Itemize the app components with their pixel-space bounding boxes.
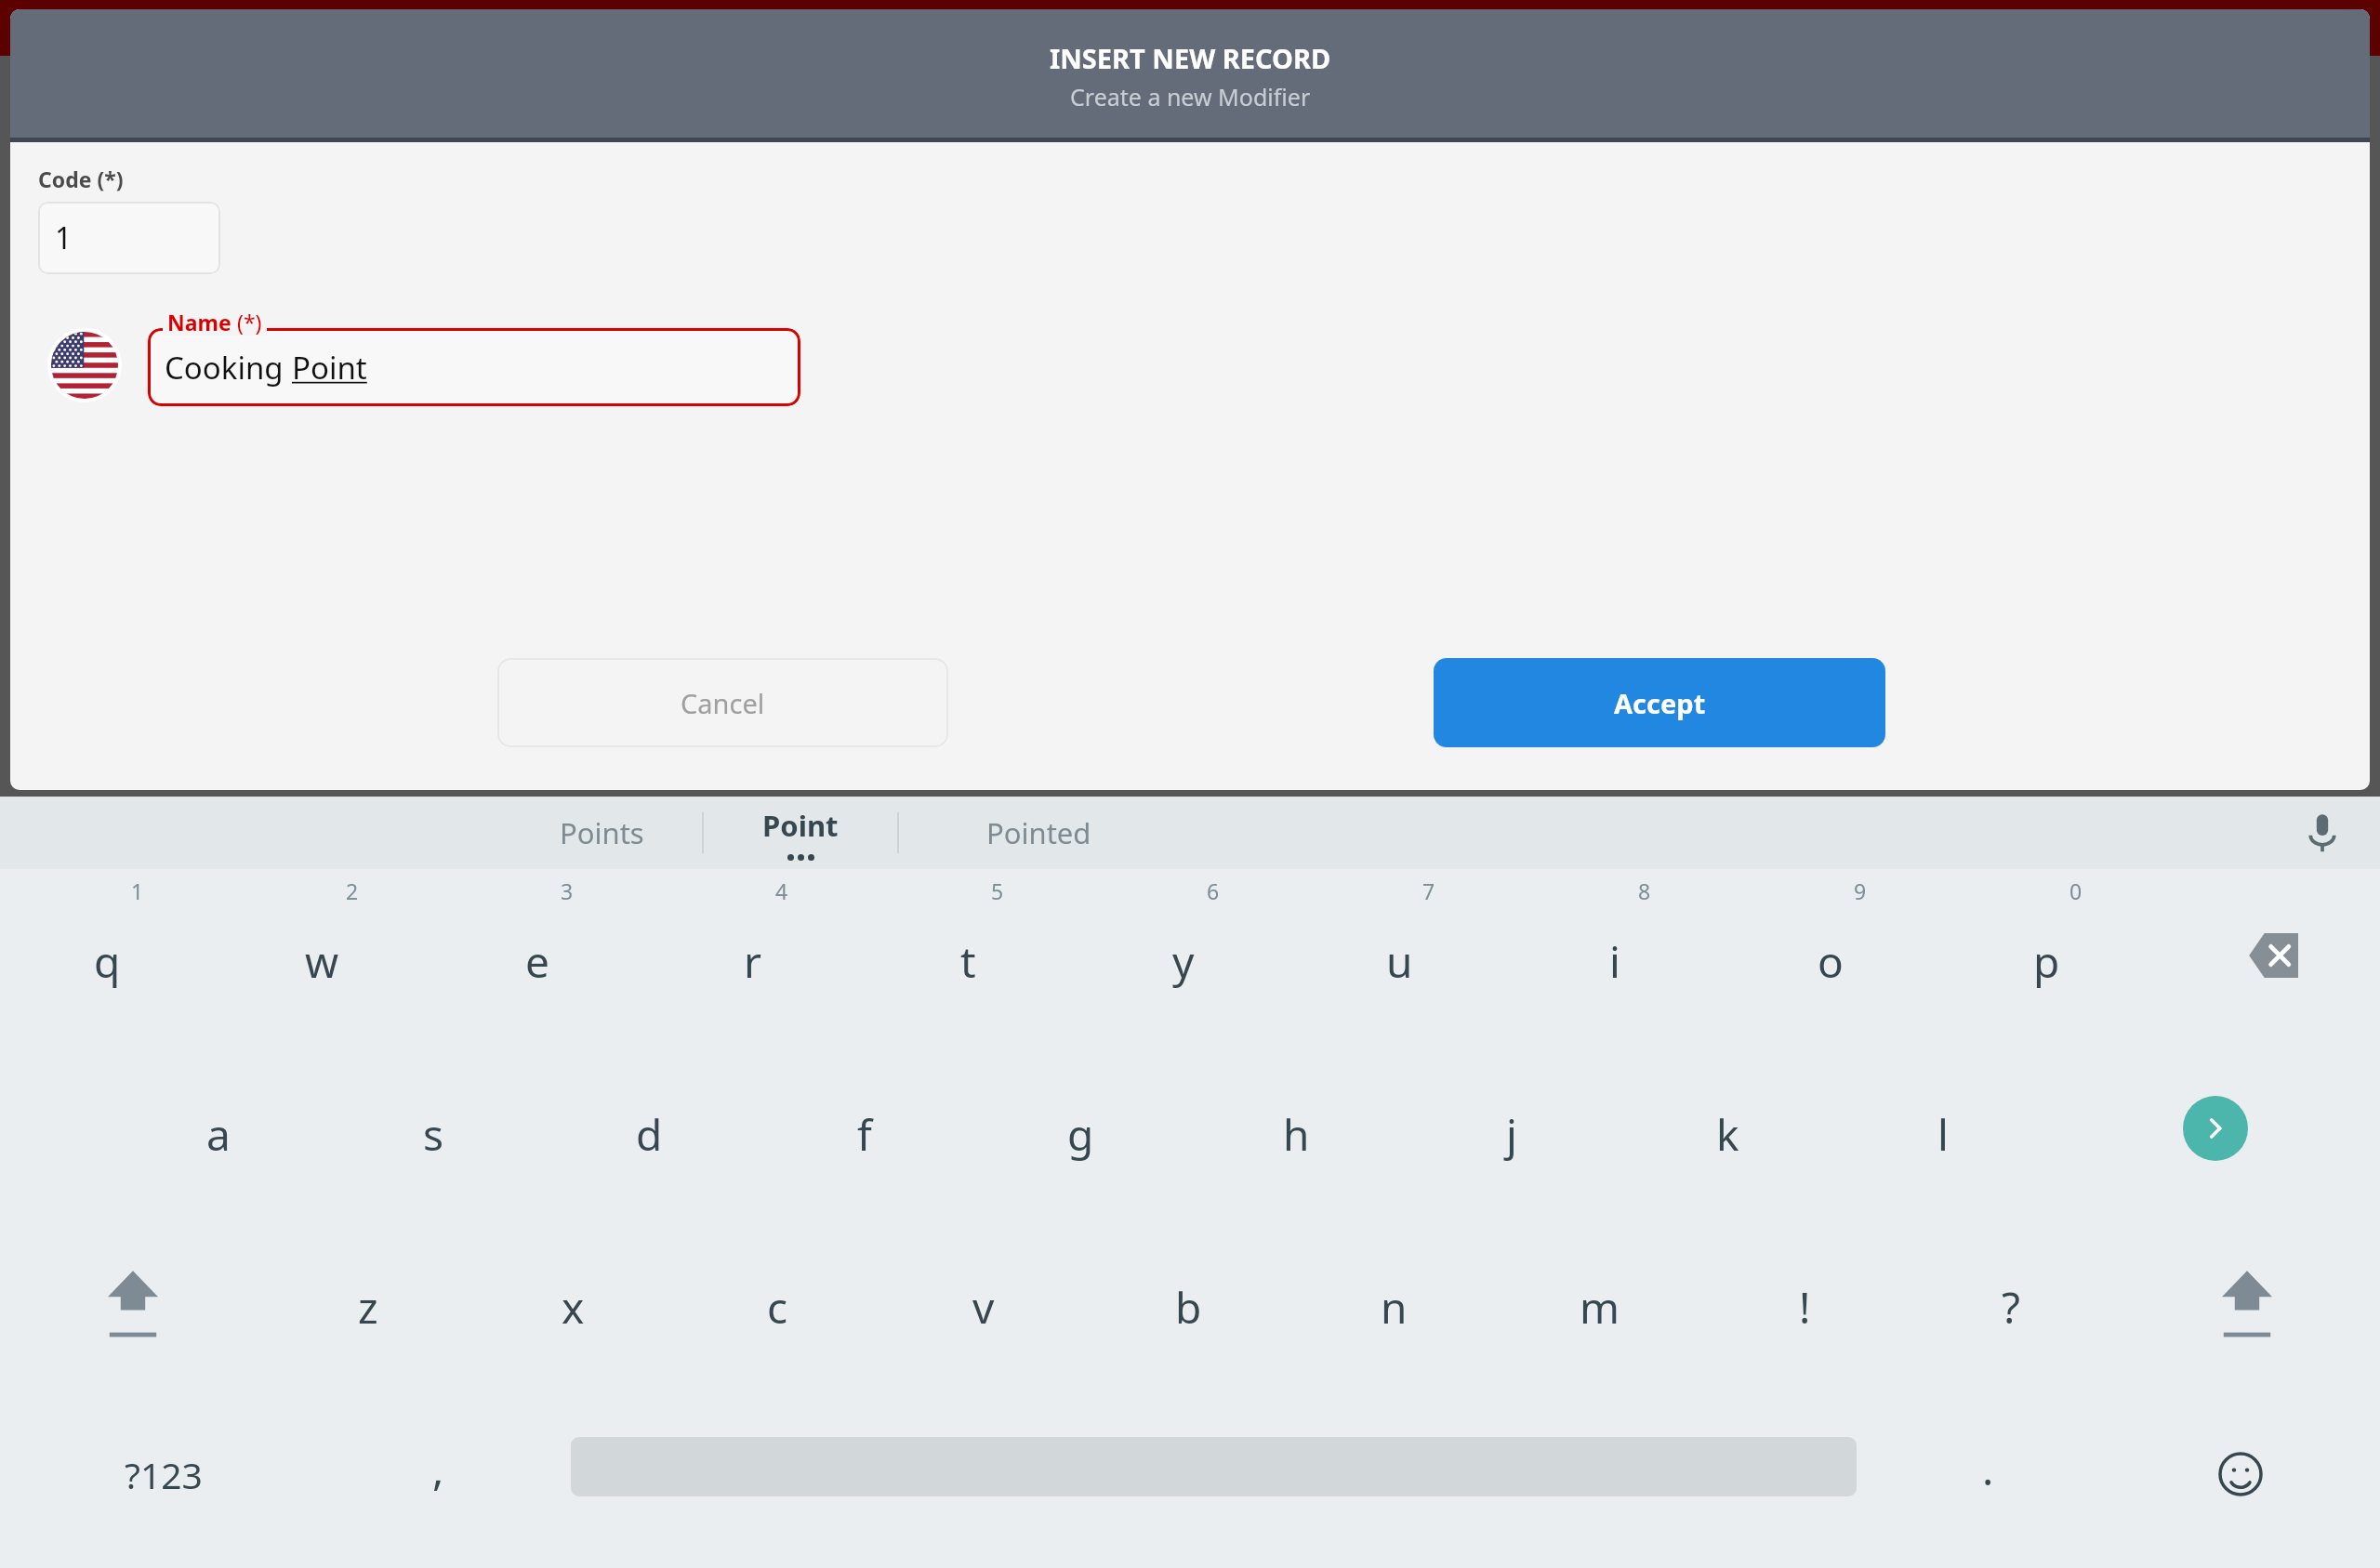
button[interactable]: Space — [550, 1388, 1876, 1561]
staticText: 7 — [1422, 876, 1435, 905]
staticText: y — [1172, 932, 1195, 991]
staticText: n — [1381, 1278, 1408, 1337]
staticText: INSERT NEW RECORD — [1050, 40, 1331, 76]
button[interactable]: 4 — [644, 869, 860, 1042]
staticText: Code (*) — [38, 165, 124, 193]
staticText: 0 — [2069, 876, 2082, 905]
button[interactable]: , — [326, 1388, 550, 1561]
button[interactable]: ? — [1908, 1215, 2113, 1388]
staticText: Name — [167, 308, 237, 336]
staticText: p — [2033, 932, 2060, 991]
staticText: 1 — [131, 876, 144, 905]
staticText: v — [972, 1278, 995, 1337]
button[interactable]: d — [541, 1042, 757, 1215]
button[interactable]: s — [325, 1042, 541, 1215]
staticText: Point — [292, 347, 367, 389]
staticText: b — [1175, 1278, 1202, 1337]
staticText: 4 — [775, 876, 788, 905]
button[interactable]: m — [1497, 1215, 1702, 1388]
button[interactable]: 5 — [860, 869, 1076, 1042]
button[interactable]: a — [111, 1042, 325, 1215]
staticText: , — [432, 1440, 444, 1498]
staticText: g — [1067, 1105, 1094, 1164]
button[interactable]: Pointed — [899, 797, 1178, 869]
staticText: d — [636, 1105, 663, 1164]
button[interactable]: 6 — [1076, 869, 1291, 1042]
button[interactable]: . — [1876, 1388, 2100, 1561]
staticText: 6 — [1207, 876, 1220, 905]
staticText: Create a new Modifier — [1070, 81, 1311, 112]
button[interactable]: 0 — [1938, 869, 2154, 1042]
button[interactable]: 7 — [1291, 869, 1507, 1042]
staticText: Pointed — [986, 813, 1091, 852]
staticText: 9 — [1854, 876, 1867, 905]
button[interactable]: Accept — [1434, 658, 1885, 747]
staticText: ? — [2002, 1278, 2020, 1337]
staticText: h — [1283, 1105, 1310, 1164]
button[interactable]: 1 — [0, 869, 215, 1042]
staticText: Accept — [1614, 685, 1706, 721]
staticText: ?123 — [125, 1450, 203, 1499]
button[interactable]: h — [1188, 1042, 1404, 1215]
button[interactable]: Point — [704, 797, 897, 869]
button[interactable]: Enter — [2051, 1042, 2380, 1215]
staticText: ! — [1799, 1278, 1811, 1337]
staticText: j — [1506, 1105, 1517, 1164]
staticText: i — [1609, 932, 1620, 991]
staticText: Points — [560, 813, 644, 852]
staticText: f — [857, 1105, 872, 1164]
button[interactable]: ?123 — [0, 1388, 326, 1561]
staticText: 1 — [55, 217, 73, 258]
staticText: s — [423, 1105, 444, 1164]
staticText: m — [1580, 1278, 1620, 1337]
staticText: c — [767, 1278, 788, 1337]
button[interactable]: 1 — [38, 202, 220, 274]
button[interactable]: z — [266, 1215, 470, 1388]
button[interactable]: l — [1835, 1042, 2051, 1215]
staticText: z — [358, 1278, 378, 1337]
staticText: q — [94, 932, 121, 991]
staticText: Cancel — [681, 685, 765, 721]
button[interactable]: Points — [502, 797, 702, 869]
button[interactable]: x — [470, 1215, 675, 1388]
staticText: 8 — [1638, 876, 1651, 905]
button[interactable]: n — [1291, 1215, 1497, 1388]
button[interactable]: b — [1086, 1215, 1291, 1388]
staticText: Cooking — [165, 347, 292, 389]
button[interactable]: Emoji — [2100, 1388, 2380, 1561]
staticText: 3 — [561, 876, 574, 905]
staticText: l — [1937, 1105, 1949, 1164]
button[interactable]: Backspace — [2154, 869, 2380, 1042]
staticText: w — [305, 932, 339, 991]
button[interactable]: Voice input — [2264, 797, 2380, 869]
staticText: 2 — [346, 876, 359, 905]
button[interactable]: j — [1404, 1042, 1620, 1215]
button[interactable]: v — [880, 1215, 1086, 1388]
button[interactable]: 8 — [1507, 869, 1723, 1042]
staticText: Point — [762, 806, 839, 845]
staticText: (*) — [237, 308, 262, 336]
staticText: t — [960, 932, 976, 991]
staticText: . — [1982, 1440, 1994, 1498]
staticText: r — [744, 932, 761, 991]
button[interactable]: g — [972, 1042, 1188, 1215]
button[interactable]: Shift — [0, 1215, 266, 1388]
button[interactable]: ! — [1702, 1215, 1908, 1388]
staticText: o — [1818, 932, 1844, 991]
button[interactable]: Shift — [2113, 1215, 2380, 1388]
button[interactable]: 2 — [215, 869, 430, 1042]
staticText: a — [206, 1105, 231, 1164]
staticText: u — [1386, 932, 1413, 991]
button[interactable]: 9 — [1723, 869, 1938, 1042]
button[interactable]: k — [1620, 1042, 1835, 1215]
button[interactable]: 3 — [430, 869, 644, 1042]
button[interactable]: f — [757, 1042, 972, 1215]
staticText: 5 — [991, 876, 1004, 905]
button[interactable]: Cancel — [497, 658, 948, 747]
staticText: k — [1716, 1105, 1739, 1164]
staticText: e — [525, 932, 549, 991]
button[interactable]: c — [675, 1215, 880, 1388]
button[interactable]: Cooking — [148, 328, 800, 406]
staticText: x — [562, 1278, 585, 1337]
